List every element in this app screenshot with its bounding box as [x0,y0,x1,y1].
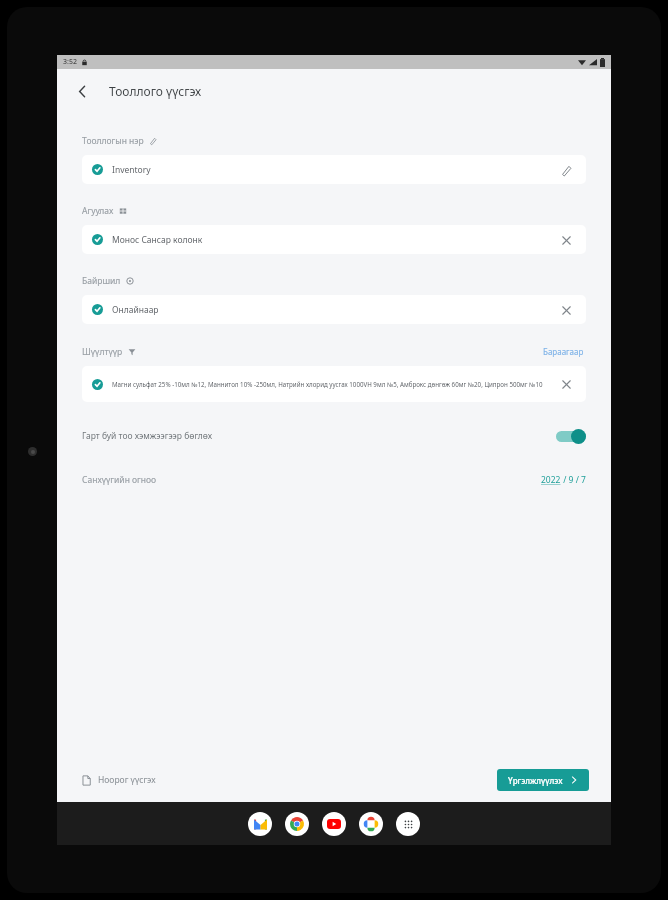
button[interactable]: Gmail [248,812,272,836]
button[interactable]: Магни сульфат 25% -10мл №12, Маннитол 10… [82,366,586,402]
staticText: / 9 / 7 [561,474,586,486]
staticText: Үргэлжлүүлэх [508,775,563,786]
button[interactable]: Toggle fill with on-hand quantity [556,428,586,444]
staticText: 3:52 [63,57,77,67]
staticText: Санхүүгийн огноо [82,474,157,486]
button[interactable]: Бараагаар [541,345,586,358]
staticText: Монос Сансар колонк [112,234,548,246]
staticText: Шүүлтүүр [82,346,123,358]
button[interactable]: Clear [556,230,576,250]
button[interactable]: Inventory [82,155,586,184]
staticText: Inventory [112,164,548,176]
button[interactable]: Гарт буй тоо хэмжээгээр бөглөх [82,423,586,449]
staticText: Тооллогын нэр [82,135,144,147]
staticText: Ноорог үүсгэх [98,774,156,786]
staticText: Байршил [82,275,121,287]
staticText: Онлайнаар [112,304,548,316]
button[interactable]: All apps [396,812,420,836]
button[interactable]: Edit [556,160,576,180]
staticText: Тооллого үүсгэх [109,83,202,99]
button[interactable]: Clear [556,374,576,394]
staticText: Агуулах [82,205,114,217]
staticText: 2022 [541,474,561,486]
staticText: Гарт буй тоо хэмжээгээр бөглөх [82,430,213,442]
button[interactable]: Photos [359,812,383,836]
button[interactable]: YouTube [322,812,346,836]
button[interactable]: Санхүүгийн огноо [82,468,586,492]
button[interactable]: Үргэлжлүүлэх [497,769,589,791]
button[interactable]: Ноорог үүсгэх [79,770,158,790]
staticText: Бараагаар [543,346,584,357]
button[interactable]: Clear [556,300,576,320]
button[interactable]: Монос Сансар колонк [82,225,586,254]
button[interactable]: Онлайнаар [82,295,586,324]
button[interactable]: Chrome [285,812,309,836]
staticText: Магни сульфат 25% -10мл №12, Маннитол 10… [112,380,548,388]
button[interactable]: Back [65,74,99,108]
